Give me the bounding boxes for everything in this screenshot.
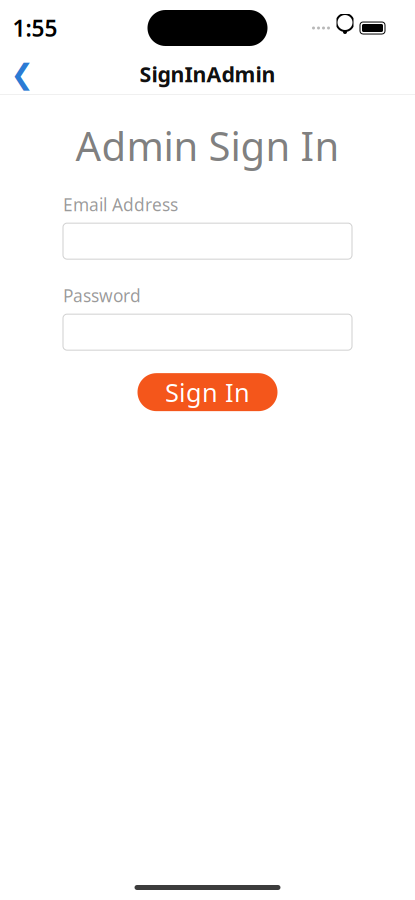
staticText: Sign In bbox=[165, 375, 250, 409]
button[interactable]: Sign In bbox=[137, 373, 277, 411]
staticText: Password bbox=[63, 284, 141, 307]
button[interactable]: Back bbox=[0, 56, 44, 92]
staticText: 1:55 bbox=[12, 13, 57, 43]
staticText: SignInAdmin bbox=[139, 60, 275, 88]
staticText: Admin Sign In bbox=[75, 119, 339, 172]
staticText: Email Address bbox=[63, 193, 178, 216]
staticText: ❮ bbox=[10, 58, 33, 90]
